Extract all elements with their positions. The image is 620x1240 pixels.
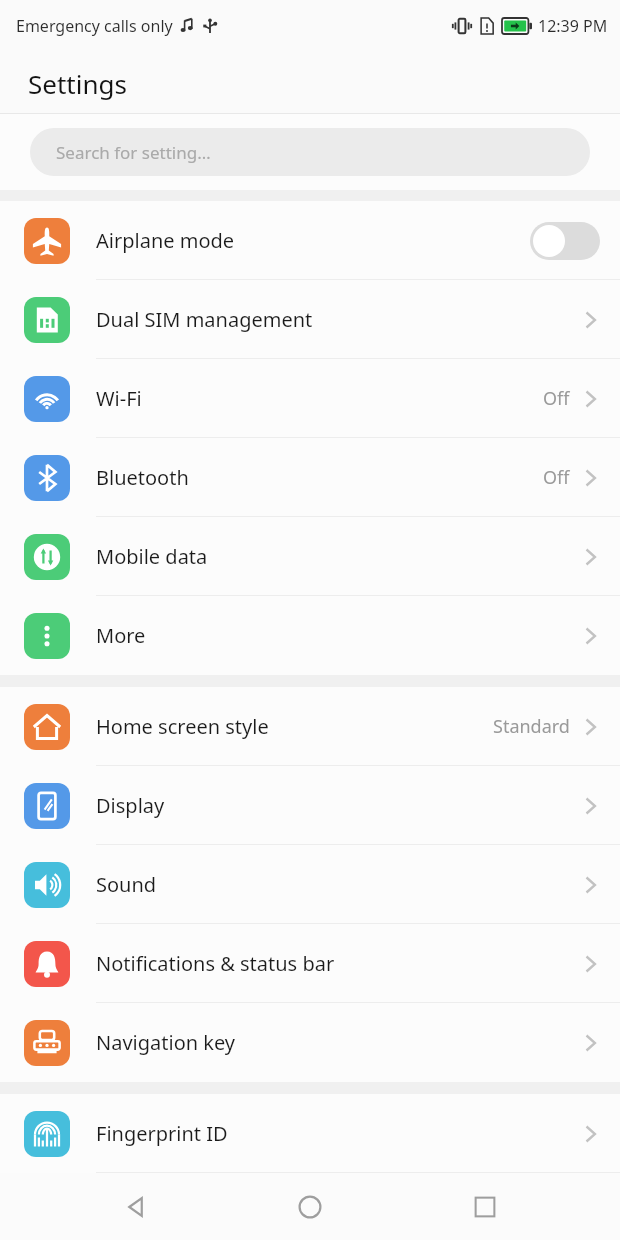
staticText: Standard xyxy=(493,714,570,739)
button[interactable]: Display xyxy=(0,766,620,845)
staticText: More xyxy=(96,622,146,649)
button[interactable]: Airplane mode xyxy=(0,201,620,280)
button[interactable]: Airplane mode toggle xyxy=(530,222,600,260)
button[interactable]: Search for setting… xyxy=(30,128,590,176)
button[interactable]: Sound xyxy=(0,845,620,924)
button[interactable]: Dual SIM management xyxy=(0,280,620,359)
button[interactable]: Recent apps xyxy=(445,1173,525,1240)
button[interactable]: More xyxy=(0,596,620,675)
button[interactable]: Mobile data xyxy=(0,517,620,596)
staticText: Emergency calls only xyxy=(16,15,173,37)
staticText: Wi-Fi xyxy=(96,385,142,412)
staticText: Off xyxy=(543,465,570,490)
button[interactable]: Notifications & status bar xyxy=(0,924,620,1003)
staticText: 12:39 PM xyxy=(538,15,608,37)
staticText: Bluetooth xyxy=(96,464,189,491)
button[interactable]: Wi-Fi xyxy=(0,359,620,438)
button[interactable]: Home screen style xyxy=(0,687,620,766)
button[interactable]: Home xyxy=(270,1173,350,1240)
staticText: Dual SIM management xyxy=(96,306,313,333)
staticText: Mobile data xyxy=(96,543,208,570)
staticText: Off xyxy=(543,386,570,411)
button[interactable]: Back xyxy=(95,1173,175,1240)
button[interactable]: Bluetooth xyxy=(0,438,620,517)
staticText: Navigation key xyxy=(96,1029,236,1056)
staticText: Sound xyxy=(96,871,157,898)
staticText: Settings xyxy=(28,66,127,101)
staticText: Airplane mode xyxy=(96,227,235,254)
staticText: Display xyxy=(96,792,165,819)
staticText: Search for setting… xyxy=(56,141,211,164)
button[interactable]: Fingerprint ID xyxy=(0,1094,620,1173)
staticText: Fingerprint ID xyxy=(96,1120,228,1147)
staticText: Notifications & status bar xyxy=(96,950,335,977)
staticText: Home screen style xyxy=(96,713,269,740)
button[interactable]: Navigation key xyxy=(0,1003,620,1082)
